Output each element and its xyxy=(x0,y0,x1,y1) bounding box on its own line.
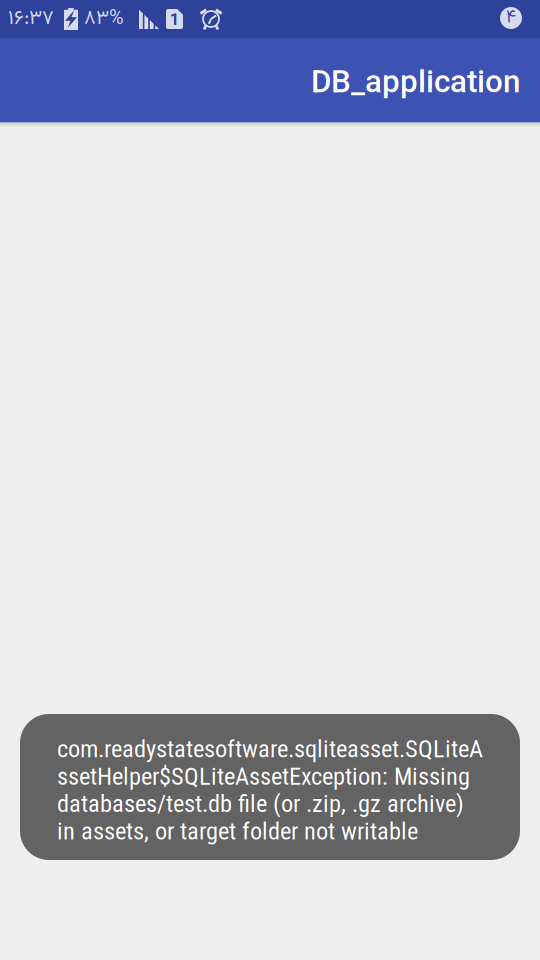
staticText: ۱۶:۳۷ xyxy=(8,3,54,35)
staticText: ۴ xyxy=(506,4,516,32)
staticText: DB_application xyxy=(311,63,520,100)
staticText: in assets, or target folder not writable xyxy=(57,817,418,845)
staticText: ssetHelper$SQLiteAssetException: Missing xyxy=(57,762,470,791)
staticText: com.readystatesoftware.sqliteasset.SQLit… xyxy=(57,735,483,763)
staticText: databases/test.db file (or .zip, .gz arc… xyxy=(57,789,464,818)
staticText: 1 xyxy=(169,9,179,29)
button[interactable]: DB_application xyxy=(311,60,520,100)
staticText: ۸۳% xyxy=(84,3,124,35)
